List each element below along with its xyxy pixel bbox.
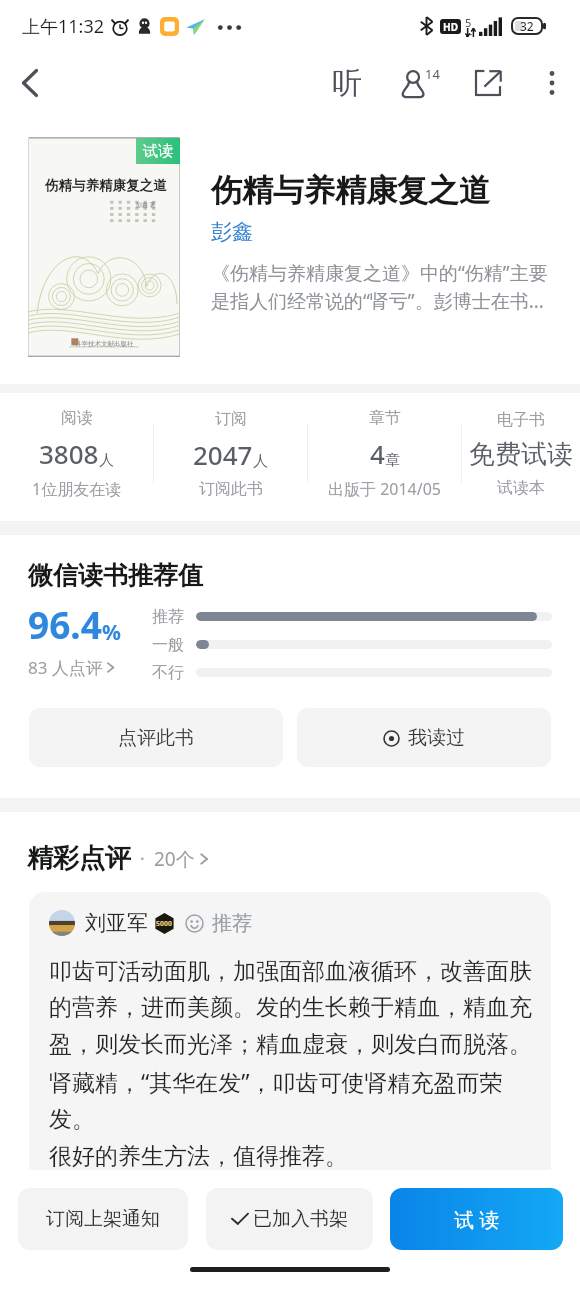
staticText: 微信读书推荐值 (28, 560, 203, 591)
staticText: 电子书 (497, 410, 545, 430)
staticText: 阅读 (61, 408, 93, 428)
staticText: 14 (425, 65, 440, 83)
staticText: 上午11:32 (22, 14, 105, 39)
button[interactable]: 阅读 (0, 408, 153, 500)
staticText: 伤精与养精康复之道 (211, 171, 490, 210)
staticText: 试 读 (454, 1206, 500, 1233)
button[interactable]: 已加入书架 (206, 1188, 373, 1250)
button[interactable]: 章节 (308, 408, 461, 500)
staticText: 5000 (156, 919, 173, 929)
staticText: 《伤精与养精康复之道》中的“伤精”主要是指人们经常说的“肾亏”。彭博士在书… (211, 260, 558, 314)
button[interactable]: Share (464, 59, 512, 107)
button[interactable]: More options (528, 59, 576, 107)
button[interactable]: 订阅上架通知 (18, 1188, 188, 1250)
staticText: 2047 (193, 437, 253, 472)
staticText: 订阅 (215, 409, 247, 429)
button[interactable]: 试 读 (390, 1188, 563, 1250)
staticText: 83 人点评 (28, 656, 103, 679)
staticText: 32 (520, 18, 534, 34)
staticText: 我读过 (408, 726, 465, 750)
button[interactable]: 电子书 (462, 410, 580, 498)
button[interactable]: 精彩点评 (27, 842, 211, 875)
staticText: HD (443, 20, 458, 34)
button[interactable]: 点评此书 (29, 708, 283, 767)
staticText: 一般 (152, 635, 184, 655)
button[interactable]: 刘亚军 (29, 892, 551, 1192)
staticText: 点评此书 (118, 726, 194, 750)
button[interactable]: 订阅 (154, 409, 307, 499)
staticText: 刘亚军 (85, 910, 148, 936)
staticText: 免费试读 (469, 438, 573, 471)
button[interactable]: 96.4 (28, 599, 152, 679)
staticText: 彭鑫 著 (136, 201, 156, 209)
staticText: 试读 (143, 142, 173, 161)
staticText: 5G (465, 15, 479, 37)
staticText: 出版于 2014/05 (328, 478, 442, 500)
button[interactable]: Listen (323, 59, 371, 107)
staticText: 1位朋友在读 (32, 478, 122, 500)
button[interactable]: 我读过 (297, 708, 551, 767)
staticText: 科学技术文献出版社 (75, 340, 134, 348)
button[interactable]: Friends reading (391, 59, 439, 107)
staticText: 人 (253, 452, 268, 471)
staticText: 20个 (154, 846, 195, 872)
staticText: 4 (370, 436, 385, 471)
staticText: 推荐 (212, 911, 252, 936)
staticText: · (140, 846, 145, 871)
staticText: 订阅此书 (199, 479, 263, 499)
staticText: 听 (332, 64, 362, 102)
button[interactable]: Back (6, 59, 54, 107)
staticText: 章 (385, 451, 400, 470)
staticText: 章节 (369, 408, 401, 428)
staticText: 推荐 (152, 607, 184, 627)
staticText: 人 (99, 451, 114, 470)
staticText: 3808 (39, 436, 99, 471)
staticText: 订阅上架通知 (46, 1207, 160, 1231)
staticText: % (102, 618, 121, 647)
staticText: 不行 (152, 663, 184, 683)
staticText: 已加入书架 (253, 1207, 348, 1231)
button[interactable]: 彭鑫 (211, 219, 253, 245)
staticText: 精彩点评 (27, 842, 131, 875)
staticText: 叩齿可活动面肌，加强面部血液循环，改善面肤的营养，进而美颜。发的生长赖于精血，精… (49, 957, 532, 1171)
staticText: 试读本 (497, 478, 545, 498)
staticText: 伤精与养精康复之道 (45, 177, 167, 194)
staticText: 96.4 (28, 599, 102, 649)
